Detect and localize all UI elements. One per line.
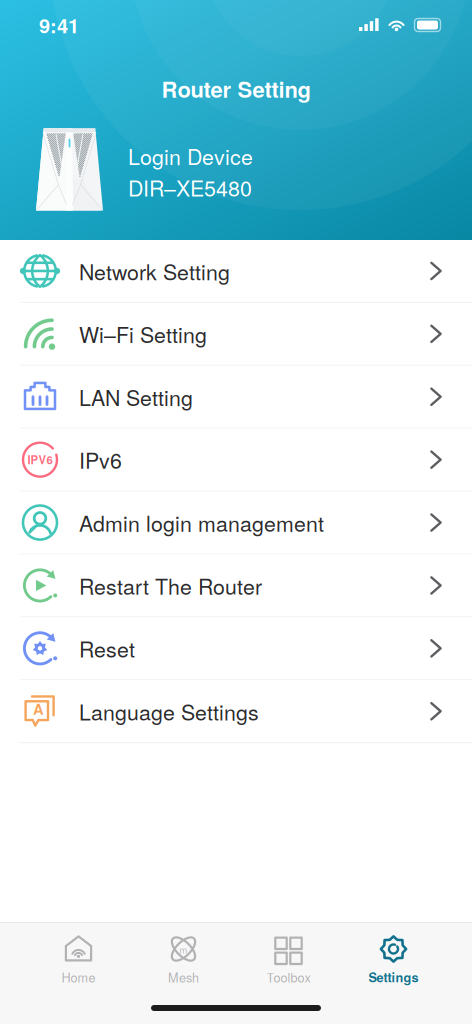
staticText: A bbox=[33, 698, 44, 719]
button[interactable]: A bbox=[0, 680, 472, 743]
button[interactable]: m bbox=[131, 923, 236, 986]
staticText: LAN Setting bbox=[79, 381, 193, 412]
staticText: Wi–Fi Setting bbox=[79, 319, 207, 349]
staticText: Settings bbox=[368, 968, 418, 986]
staticText: m bbox=[179, 943, 187, 956]
staticText: Admin login management bbox=[79, 507, 324, 538]
button[interactable]: Toolbox bbox=[236, 923, 341, 986]
staticText: Mesh bbox=[168, 968, 199, 986]
staticText: IPV6 bbox=[27, 451, 52, 468]
button[interactable]: Network Setting bbox=[0, 240, 472, 303]
staticText: Restart The Router bbox=[79, 570, 262, 601]
staticText: Reset bbox=[79, 633, 135, 664]
button[interactable]: Home bbox=[26, 923, 131, 986]
button[interactable]: LAN Setting bbox=[0, 366, 472, 429]
staticText: DIR–XE5480 bbox=[128, 172, 252, 203]
staticText: 9:41 bbox=[39, 11, 79, 39]
button[interactable]: IPV6 bbox=[0, 429, 472, 492]
button[interactable]: Admin login management bbox=[0, 492, 472, 554]
staticText: Network Setting bbox=[79, 256, 230, 286]
staticText: Login Device bbox=[128, 140, 253, 171]
button[interactable]: Settings bbox=[341, 923, 446, 986]
staticText: Toolbox bbox=[266, 968, 310, 986]
staticText: IPv6 bbox=[79, 444, 122, 475]
staticText: Router Setting bbox=[161, 73, 310, 104]
staticText: Language Settings bbox=[79, 696, 259, 726]
staticText: Home bbox=[61, 968, 95, 986]
button[interactable]: Reset bbox=[0, 617, 472, 680]
button[interactable]: Restart The Router bbox=[0, 554, 472, 617]
button[interactable]: Wi–Fi Setting bbox=[0, 303, 472, 366]
